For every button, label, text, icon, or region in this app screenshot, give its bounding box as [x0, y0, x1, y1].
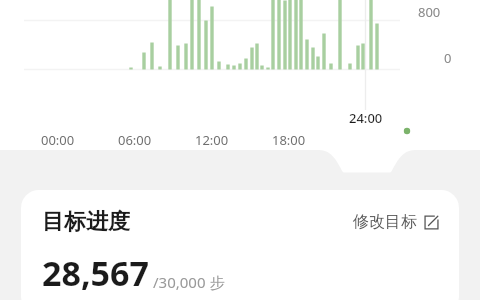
staticText: /30,000 步 [153, 272, 225, 292]
staticText: 18:00 [272, 131, 306, 149]
other: Edit goal [424, 215, 439, 230]
staticText: 目标进度 [42, 208, 130, 236]
staticText: 24:00 [349, 109, 383, 127]
staticText: 00:00 [41, 131, 75, 149]
staticText: 0 [444, 49, 452, 67]
button[interactable]: 修改目标 [351, 210, 441, 234]
staticText: 12:00 [195, 131, 229, 149]
staticText: 06:00 [118, 131, 152, 149]
staticText: 800 [418, 3, 441, 21]
staticText: 修改目标 [353, 212, 417, 232]
staticText: 28,567 [42, 250, 149, 296]
